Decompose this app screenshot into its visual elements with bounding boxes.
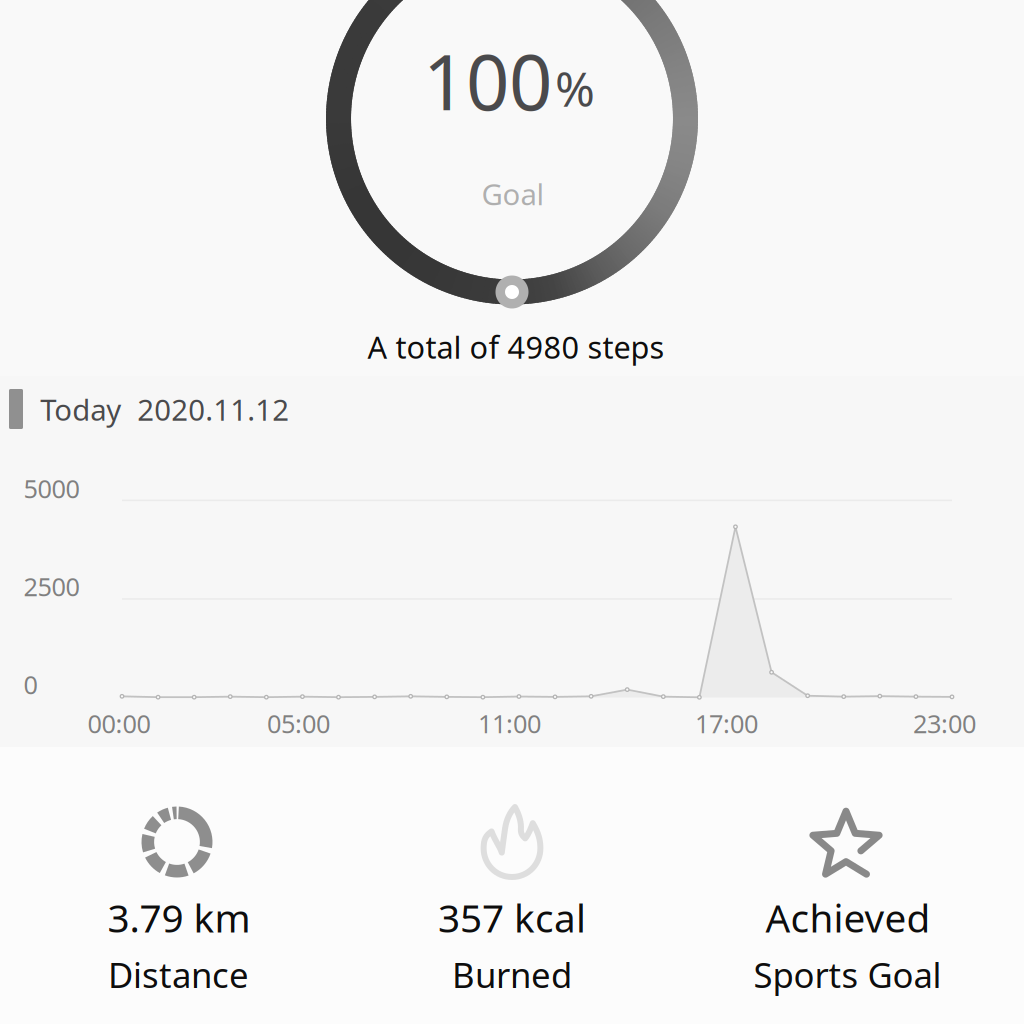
staticText: 5000 (23, 472, 79, 505)
staticText: 3.79 km (107, 892, 250, 943)
button[interactable]: Today 2020.11.12 (0, 0, 1024, 1024)
staticText: 100 (423, 30, 552, 131)
staticText: A total of 4980 steps (367, 326, 664, 367)
staticText: Goal (481, 174, 544, 213)
staticText: Sports Goal (753, 952, 941, 998)
staticText: 17:00 (695, 707, 758, 740)
staticText: Distance (108, 952, 249, 998)
button[interactable]: Daily step goal, 100 percent complete (0, 0, 1024, 1024)
staticText: Burned (452, 952, 572, 998)
staticText: 23:00 (913, 707, 976, 740)
staticText: Today 2020.11.12 (40, 390, 289, 429)
staticText: % (555, 56, 595, 120)
staticText: Achieved (765, 892, 930, 943)
staticText: 0 (23, 668, 37, 701)
staticText: 11:00 (478, 707, 541, 740)
staticText: 357 kcal (438, 892, 586, 943)
staticText: 05:00 (267, 707, 330, 740)
staticText: 00:00 (87, 707, 150, 740)
button[interactable]: Achieved (0, 0, 1024, 1024)
button[interactable]: 3.79 km (0, 0, 1024, 1024)
staticText: 2500 (23, 570, 79, 603)
button[interactable]: 357 kcal (0, 0, 1024, 1024)
